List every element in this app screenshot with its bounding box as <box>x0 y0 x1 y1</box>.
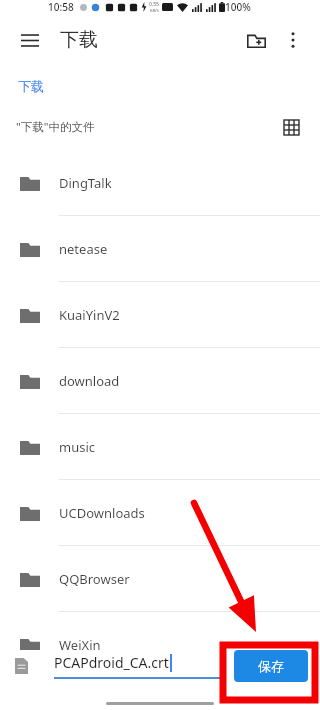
staticText: netease <box>59 240 108 258</box>
staticText: WeiXin <box>59 636 101 654</box>
button[interactable]: New folder <box>236 20 276 60</box>
staticText: "下载"中的文件 <box>16 119 95 135</box>
button[interactable]: WeiXin <box>0 612 320 678</box>
staticText: 保存 <box>258 658 284 674</box>
staticText: 下载 <box>18 78 44 94</box>
staticText: 下载 <box>60 28 98 52</box>
staticText: download <box>59 372 120 390</box>
button[interactable]: download <box>0 348 320 414</box>
button[interactable]: 保存 <box>234 650 308 682</box>
button[interactable]: More options <box>276 23 310 57</box>
staticText: QQBrowser <box>59 570 130 588</box>
button[interactable]: File type <box>8 653 34 679</box>
button[interactable]: KuaiYinV2 <box>0 282 320 348</box>
staticText: 100% <box>225 0 251 14</box>
staticText: PCAPdroid_CA.crt <box>54 653 169 672</box>
button[interactable]: Menu <box>10 20 50 60</box>
staticText: DingTalk <box>59 174 112 192</box>
staticText: music <box>59 438 96 456</box>
button[interactable]: Grid view <box>276 112 306 142</box>
staticText: 10:58 <box>48 0 74 14</box>
button[interactable]: QQBrowser <box>0 546 320 612</box>
button[interactable]: 下载 <box>16 74 46 98</box>
staticText: 0.55 <box>149 1 159 8</box>
button[interactable]: UCDownloads <box>0 480 320 546</box>
staticText: UCDownloads <box>59 504 145 522</box>
button[interactable]: DingTalk <box>0 150 320 216</box>
button[interactable]: netease <box>0 216 320 282</box>
staticText: KB/S <box>150 8 159 13</box>
button[interactable]: music <box>0 414 320 480</box>
staticText: KuaiYinV2 <box>59 306 120 324</box>
